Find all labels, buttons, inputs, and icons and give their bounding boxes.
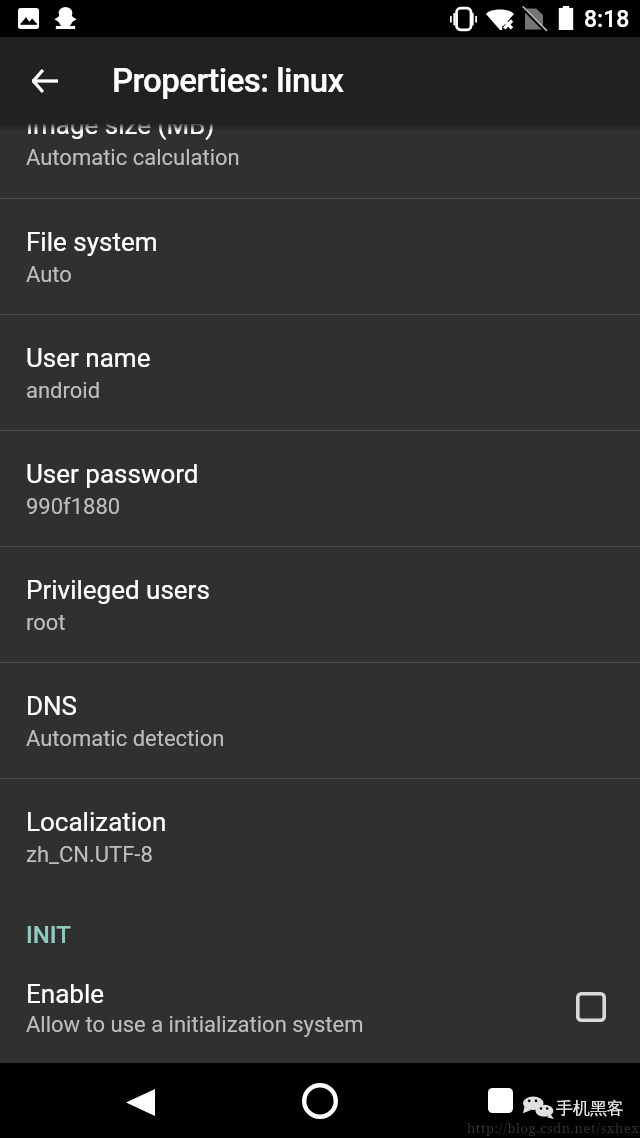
staticText: 手机黑客 xyxy=(556,1098,624,1119)
staticText: android xyxy=(26,378,101,404)
button[interactable]: File system xyxy=(0,199,640,314)
button[interactable]: User name xyxy=(0,315,640,430)
button[interactable]: Back xyxy=(20,56,70,106)
button[interactable]: Image size (MB) xyxy=(0,82,640,198)
staticText: zh_CN.UTF-8 xyxy=(26,842,153,868)
button[interactable]: User password xyxy=(0,431,640,546)
button[interactable]: Back xyxy=(108,1063,172,1138)
staticText: Allow to use a initialization system xyxy=(26,1012,364,1038)
staticText: Localization xyxy=(26,807,167,837)
staticText: Properties: linux xyxy=(112,61,344,100)
staticText: DNS xyxy=(26,691,78,721)
staticText: 990f1880 xyxy=(26,494,121,520)
button[interactable]: DNS xyxy=(0,663,640,778)
staticText: Automatic calculation xyxy=(26,145,240,171)
staticText: 8:18 xyxy=(584,6,630,33)
button[interactable]: Privileged users xyxy=(0,547,640,662)
staticText: Privileged users xyxy=(26,575,210,605)
staticText: Image size (MB) xyxy=(26,110,215,140)
staticText: Automatic detection xyxy=(26,726,225,752)
staticText: User name xyxy=(26,343,151,373)
staticText: INIT xyxy=(26,921,71,949)
staticText: Auto xyxy=(26,262,72,288)
staticText: root xyxy=(26,610,66,636)
staticText: User password xyxy=(26,459,199,489)
staticText: File system xyxy=(26,227,158,257)
staticText: http://blog.csdn.net/sxhexin xyxy=(467,1119,640,1137)
button[interactable]: Recent apps xyxy=(468,1063,532,1138)
button[interactable]: Enable checkbox xyxy=(576,992,606,1022)
button[interactable]: Localization xyxy=(0,779,640,894)
button[interactable]: Home xyxy=(288,1063,352,1138)
staticText: Enable xyxy=(26,979,104,1009)
button[interactable]: Enable xyxy=(0,970,640,1060)
